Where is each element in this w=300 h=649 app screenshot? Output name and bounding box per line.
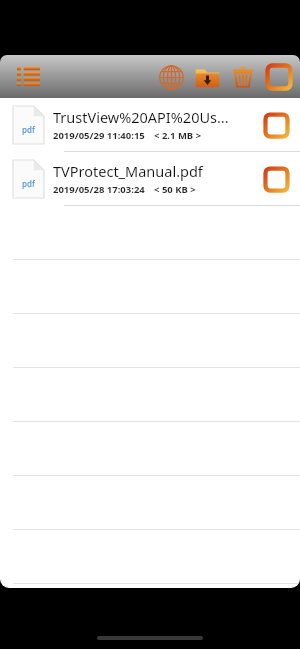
staticText: TrustView%20API%20Us...: [53, 107, 229, 127]
staticText: < 2.1 MB >: [154, 129, 202, 142]
button[interactable]: pdf: [0, 98, 300, 151]
button[interactable]: Delete: [225, 59, 261, 95]
staticText: TVProtect_Manual.pdf: [53, 161, 203, 181]
button[interactable]: Download to folder: [189, 59, 225, 95]
button[interactable]: List view: [10, 59, 46, 95]
staticText: 2019/05/29 11:40:15: [53, 129, 145, 142]
button[interactable]: Select file: [260, 163, 292, 195]
button[interactable]: Select all: [261, 59, 297, 95]
button[interactable]: Browse web: [153, 59, 189, 95]
button[interactable]: Select file: [260, 109, 292, 141]
button[interactable]: pdf: [0, 152, 300, 205]
staticText: 2019/05/28 17:03:24: [53, 183, 145, 196]
staticText: pdf: [22, 124, 35, 135]
staticText: < 50 KB >: [154, 183, 196, 196]
staticText: pdf: [22, 178, 35, 189]
